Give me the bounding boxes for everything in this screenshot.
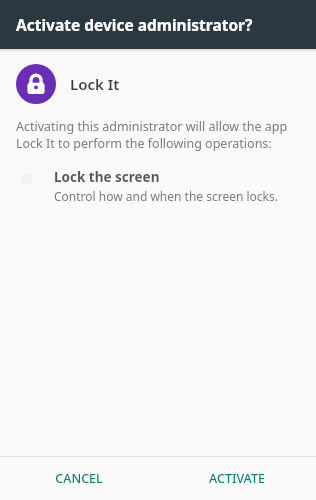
staticText: ACTIVATE — [209, 470, 265, 487]
staticText: Control how and when the screen locks. — [54, 188, 278, 204]
staticText: Activate device administrator? — [16, 14, 253, 35]
staticText: CANCEL — [55, 470, 103, 487]
other: Lock It app icon — [25, 73, 47, 95]
staticText: Activating this administrator will allow… — [16, 118, 288, 152]
staticText: Lock the screen — [54, 168, 160, 186]
button[interactable]: ACTIVATE — [158, 457, 316, 500]
staticText: Lock It — [70, 74, 120, 94]
button[interactable]: Lock the screen — [0, 166, 316, 206]
button[interactable]: CANCEL — [0, 457, 158, 500]
